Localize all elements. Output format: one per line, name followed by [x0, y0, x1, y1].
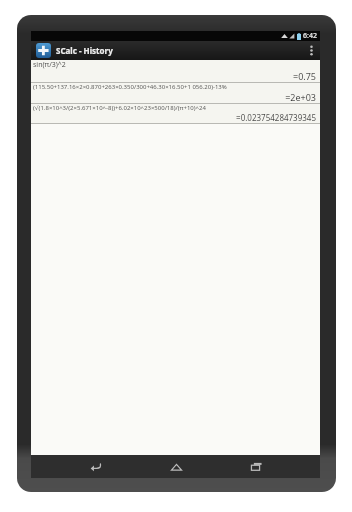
- button[interactable]: (115.50+137.16×2×0.870+263×0.350/300+46.…: [31, 83, 320, 103]
- button[interactable]: More options: [304, 41, 318, 60]
- button[interactable]: (√(1.8×10^3/(2×5.671×10^-8))+6.02×10^23×…: [31, 104, 320, 123]
- button[interactable]: Recent apps: [239, 455, 273, 478]
- staticText: =0.75: [33, 70, 316, 82]
- staticText: (√(1.8×10^3/(2×5.671×10^-8))+6.02×10^23×…: [33, 104, 206, 112]
- button[interactable]: Back: [78, 455, 112, 478]
- staticText: =0.023754284739345: [33, 112, 316, 123]
- staticText: 6:42: [303, 31, 317, 41]
- staticText: sin(π/3)^2: [33, 60, 66, 70]
- staticText: =2e+03: [33, 91, 316, 103]
- staticText: SCalc - History: [56, 45, 113, 56]
- button[interactable]: SCalc - History: [36, 41, 304, 60]
- button[interactable]: Home: [159, 455, 193, 478]
- button[interactable]: sin(π/3)^2: [31, 60, 320, 82]
- staticText: (115.50+137.16×2×0.870+263×0.350/300+46.…: [33, 83, 227, 91]
